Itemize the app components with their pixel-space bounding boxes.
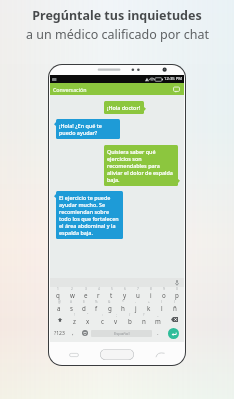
staticText: El ejercicio te puede ayudar mucho. Se r… <box>59 194 120 236</box>
button[interactable]: 0 <box>170 287 183 300</box>
button[interactable]: ) <box>168 300 181 313</box>
button[interactable]: Quisiera saber qué ejercicios son recome… <box>104 145 180 186</box>
button[interactable]: Enviar <box>168 328 179 339</box>
button[interactable]: Borrar <box>165 313 183 326</box>
staticText: w <box>70 291 75 299</box>
button[interactable]: Nuevo mensaje <box>172 85 181 94</box>
staticText: 8 <box>150 287 152 291</box>
button[interactable]: . <box>152 326 164 340</box>
button[interactable]: + <box>142 300 155 313</box>
button[interactable]: _ <box>151 313 165 326</box>
button[interactable]: 7 <box>131 287 144 300</box>
staticText: Pregúntale tus inquietudes <box>32 7 202 24</box>
button[interactable]: ?123 <box>51 326 67 340</box>
staticText: ( <box>161 300 162 304</box>
staticText: & <box>108 300 111 304</box>
staticText: m <box>155 317 161 325</box>
button[interactable]: - <box>129 300 142 313</box>
staticText: ?123 <box>54 330 65 337</box>
staticText: ) <box>174 300 175 304</box>
button[interactable]: Home <box>100 349 134 360</box>
staticText: 5 <box>111 287 113 291</box>
staticText: 0 <box>176 287 178 291</box>
staticText: 3 <box>85 287 87 291</box>
staticText: ; <box>116 313 117 317</box>
staticText: , <box>72 329 74 337</box>
button[interactable]: @ <box>53 300 65 313</box>
staticText: d <box>82 304 86 312</box>
staticText: c <box>101 317 104 325</box>
staticText: p <box>175 291 179 299</box>
staticText: 12:35 PM <box>164 76 183 82</box>
button[interactable]: & <box>103 300 116 313</box>
button[interactable]: 3 <box>79 287 92 300</box>
staticText: % <box>95 300 98 304</box>
button[interactable]: % <box>90 300 103 313</box>
staticText: k <box>147 304 151 312</box>
button[interactable]: / <box>123 313 137 326</box>
staticText: Español <box>114 331 130 337</box>
staticText: : <box>102 313 103 317</box>
staticText: . <box>157 329 159 337</box>
staticText: i <box>150 291 152 299</box>
button[interactable]: ? <box>137 313 151 326</box>
button[interactable]: ( <box>155 300 168 313</box>
button[interactable]: 4 <box>92 287 105 300</box>
staticText: l <box>161 304 163 312</box>
staticText: ! <box>74 313 75 317</box>
staticText: " <box>87 313 89 317</box>
staticText: - <box>135 300 137 304</box>
staticText: $ <box>83 300 85 304</box>
staticText: ¡Hola doctor! <box>107 104 141 111</box>
button[interactable]: 2 <box>65 287 79 300</box>
button[interactable]: El ejercicio te puede ayudar mucho. Se r… <box>54 191 123 239</box>
button[interactable]: ¡Hola doctor! <box>104 101 180 114</box>
staticText: 6 <box>124 287 126 291</box>
staticText: n <box>142 317 146 325</box>
button[interactable]: , <box>67 326 79 340</box>
staticText: b <box>128 317 132 325</box>
staticText: t <box>110 291 113 299</box>
staticText: q <box>56 291 60 299</box>
staticText: + <box>148 300 150 304</box>
staticText: 4 <box>98 287 100 291</box>
staticText: 9 <box>163 287 165 291</box>
button[interactable]: ! <box>68 313 81 326</box>
staticText: * <box>122 300 124 304</box>
staticText: f <box>95 304 98 312</box>
staticText: ñ <box>173 304 177 312</box>
button[interactable]: Español <box>91 330 152 337</box>
button[interactable]: 5 <box>105 287 118 300</box>
button[interactable]: ¡Hola! ¿En qué te puedo ayudar? <box>54 119 120 139</box>
button[interactable]: : <box>95 313 109 326</box>
button[interactable]: Emoji <box>79 326 91 340</box>
staticText: j <box>135 304 137 312</box>
staticText: # <box>70 300 73 304</box>
button[interactable]: 8 <box>144 287 157 300</box>
staticText: x <box>86 317 90 325</box>
staticText: 7 <box>137 287 139 291</box>
button[interactable]: 9 <box>157 287 170 300</box>
staticText: z <box>73 317 76 325</box>
staticText: e <box>84 291 88 299</box>
button[interactable]: ; <box>109 313 123 326</box>
other: Dictado por voz <box>175 280 179 286</box>
button[interactable]: $ <box>77 300 90 313</box>
staticText: g <box>108 304 112 312</box>
button[interactable]: Mayúsculas <box>51 313 68 326</box>
staticText: / <box>129 313 131 317</box>
staticText: ¡Hola! ¿En qué te puedo ayudar? <box>59 122 117 136</box>
staticText: s <box>70 304 73 312</box>
staticText: v <box>114 317 118 325</box>
button[interactable]: 6 <box>118 287 131 300</box>
button[interactable]: 1 <box>51 287 65 300</box>
staticText: y <box>123 291 127 299</box>
button[interactable]: " <box>81 313 95 326</box>
staticText: 1 <box>57 287 59 291</box>
staticText: h <box>121 304 125 312</box>
staticText: @ <box>58 300 61 304</box>
staticText: ? <box>143 313 145 317</box>
button[interactable]: # <box>65 300 77 313</box>
staticText: r <box>97 291 100 299</box>
button[interactable]: * <box>116 300 129 313</box>
